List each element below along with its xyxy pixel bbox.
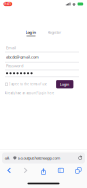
button[interactable]: Login xyxy=(25,29,36,36)
staticText: Register xyxy=(47,29,61,35)
staticText: Login xyxy=(60,82,70,87)
button[interactable]: Bookmarks xyxy=(52,166,70,175)
button[interactable]: Login xyxy=(56,80,73,88)
staticText: 9:41 xyxy=(4,2,11,6)
staticText: Password xyxy=(6,63,23,68)
staticText: abcde@gmail.com xyxy=(6,54,39,60)
button[interactable]: Register xyxy=(47,29,61,36)
button[interactable]: Back xyxy=(0,166,17,175)
button[interactable]: Page settings xyxy=(3,154,11,162)
staticText: Login xyxy=(25,29,36,35)
staticText: a-o.output-hatenaapp.com xyxy=(18,155,61,161)
button[interactable]: Tabs xyxy=(70,166,87,175)
button[interactable]: I agree to the terms of use xyxy=(5,82,47,86)
button[interactable]: Forward xyxy=(17,166,35,175)
button[interactable]: Already have an account? Login here xyxy=(0,91,54,95)
staticText: Already have an account? Login here xyxy=(4,91,54,95)
staticText: Email xyxy=(6,45,16,50)
button[interactable]: Share xyxy=(35,166,52,175)
staticText: aA xyxy=(5,155,10,161)
staticText: I agree to the terms of use xyxy=(9,82,47,86)
button[interactable]: Reload xyxy=(77,154,84,162)
